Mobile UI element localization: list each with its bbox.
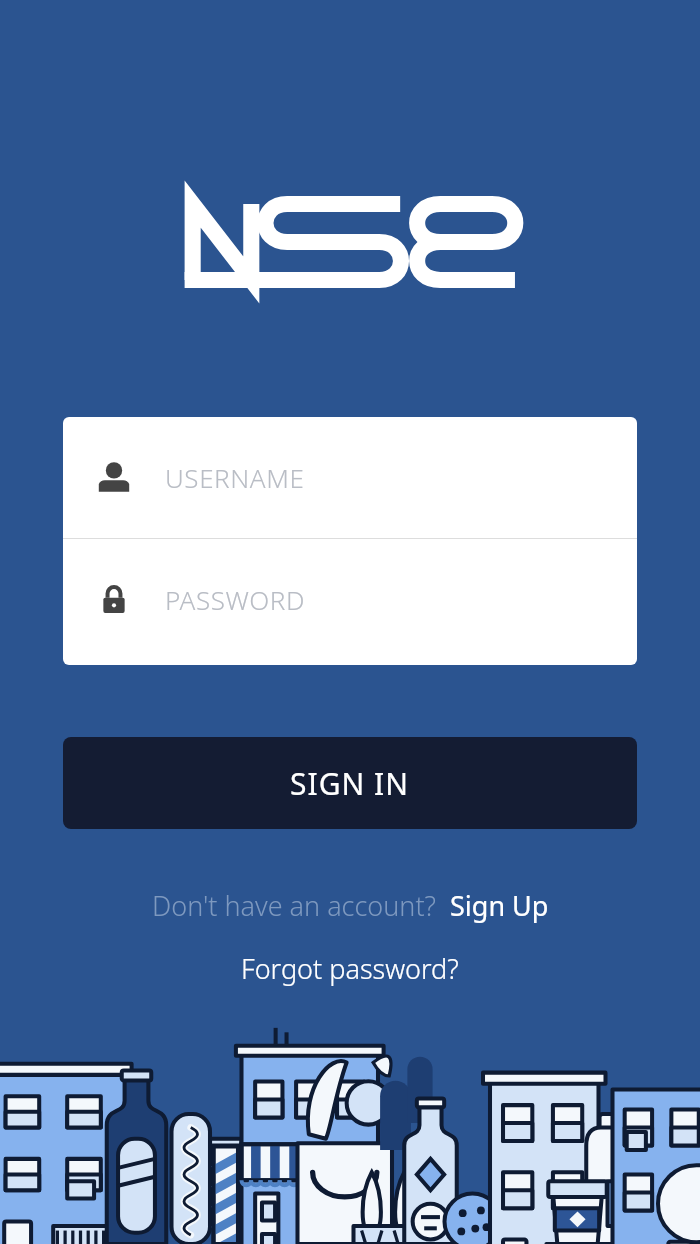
staticText: PASSWORD	[165, 582, 306, 617]
staticText: Sign Up	[450, 887, 549, 924]
other: Username	[95, 459, 133, 497]
button[interactable]: SIGN IN	[63, 737, 637, 829]
staticText: USERNAME	[165, 460, 305, 495]
button[interactable]: Username	[63, 417, 637, 538]
staticText: Forgot password?	[241, 950, 459, 987]
staticText: Don't have an account?	[152, 887, 436, 924]
button[interactable]: Sign Up	[450, 887, 549, 924]
other: Password	[95, 581, 133, 619]
button[interactable]: Password	[63, 539, 637, 660]
button[interactable]: Forgot password?	[241, 950, 459, 987]
staticText: SIGN IN	[290, 763, 410, 804]
